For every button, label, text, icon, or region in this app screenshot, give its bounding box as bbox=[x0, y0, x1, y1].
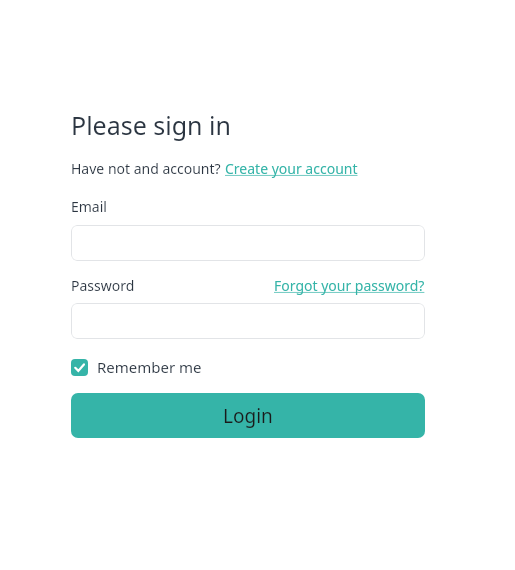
staticText: Password bbox=[71, 276, 135, 295]
staticText: Create your account bbox=[225, 159, 358, 178]
staticText: Email bbox=[71, 197, 107, 216]
button[interactable]: Create your account bbox=[225, 159, 358, 178]
staticText: Forgot your password? bbox=[274, 276, 425, 295]
staticText: Login bbox=[223, 403, 273, 429]
staticText: Please sign in bbox=[71, 108, 231, 142]
button[interactable] bbox=[71, 303, 425, 339]
button[interactable] bbox=[71, 225, 425, 261]
button[interactable]: Login bbox=[71, 393, 425, 438]
button[interactable]: Forgot your password? bbox=[274, 276, 425, 295]
staticText: Have not and account? bbox=[71, 159, 225, 178]
staticText: Remember me bbox=[97, 357, 202, 377]
button[interactable]: Remember me bbox=[71, 357, 202, 377]
